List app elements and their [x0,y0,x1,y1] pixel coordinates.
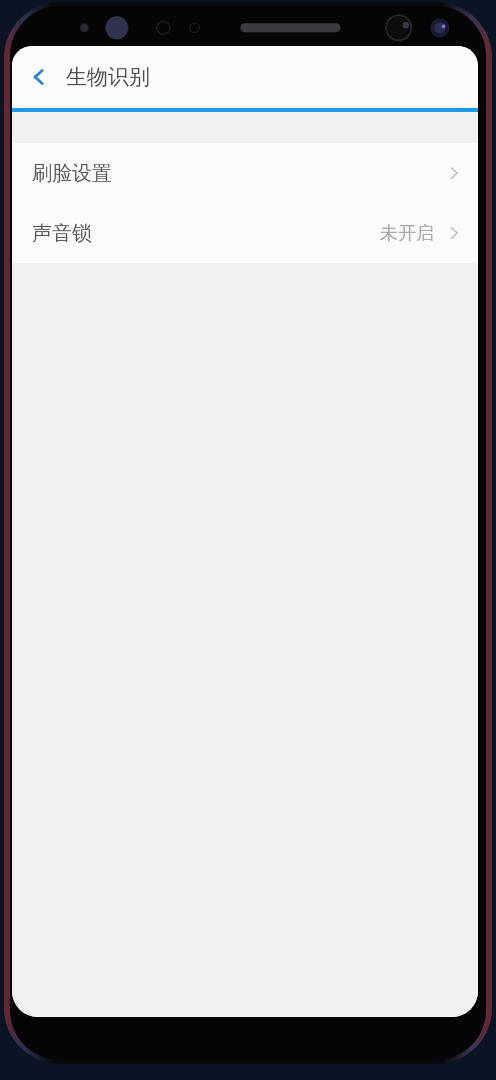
staticText: 未开启 [380,222,434,245]
button[interactable]: 返回 [12,46,66,108]
staticText: 声音锁 [32,221,92,246]
staticText: 刷脸设置 [32,161,112,186]
button[interactable]: 刷脸设置 [12,143,478,203]
button[interactable]: 声音锁 [12,203,478,263]
staticText: 生物识别 [66,64,150,90]
